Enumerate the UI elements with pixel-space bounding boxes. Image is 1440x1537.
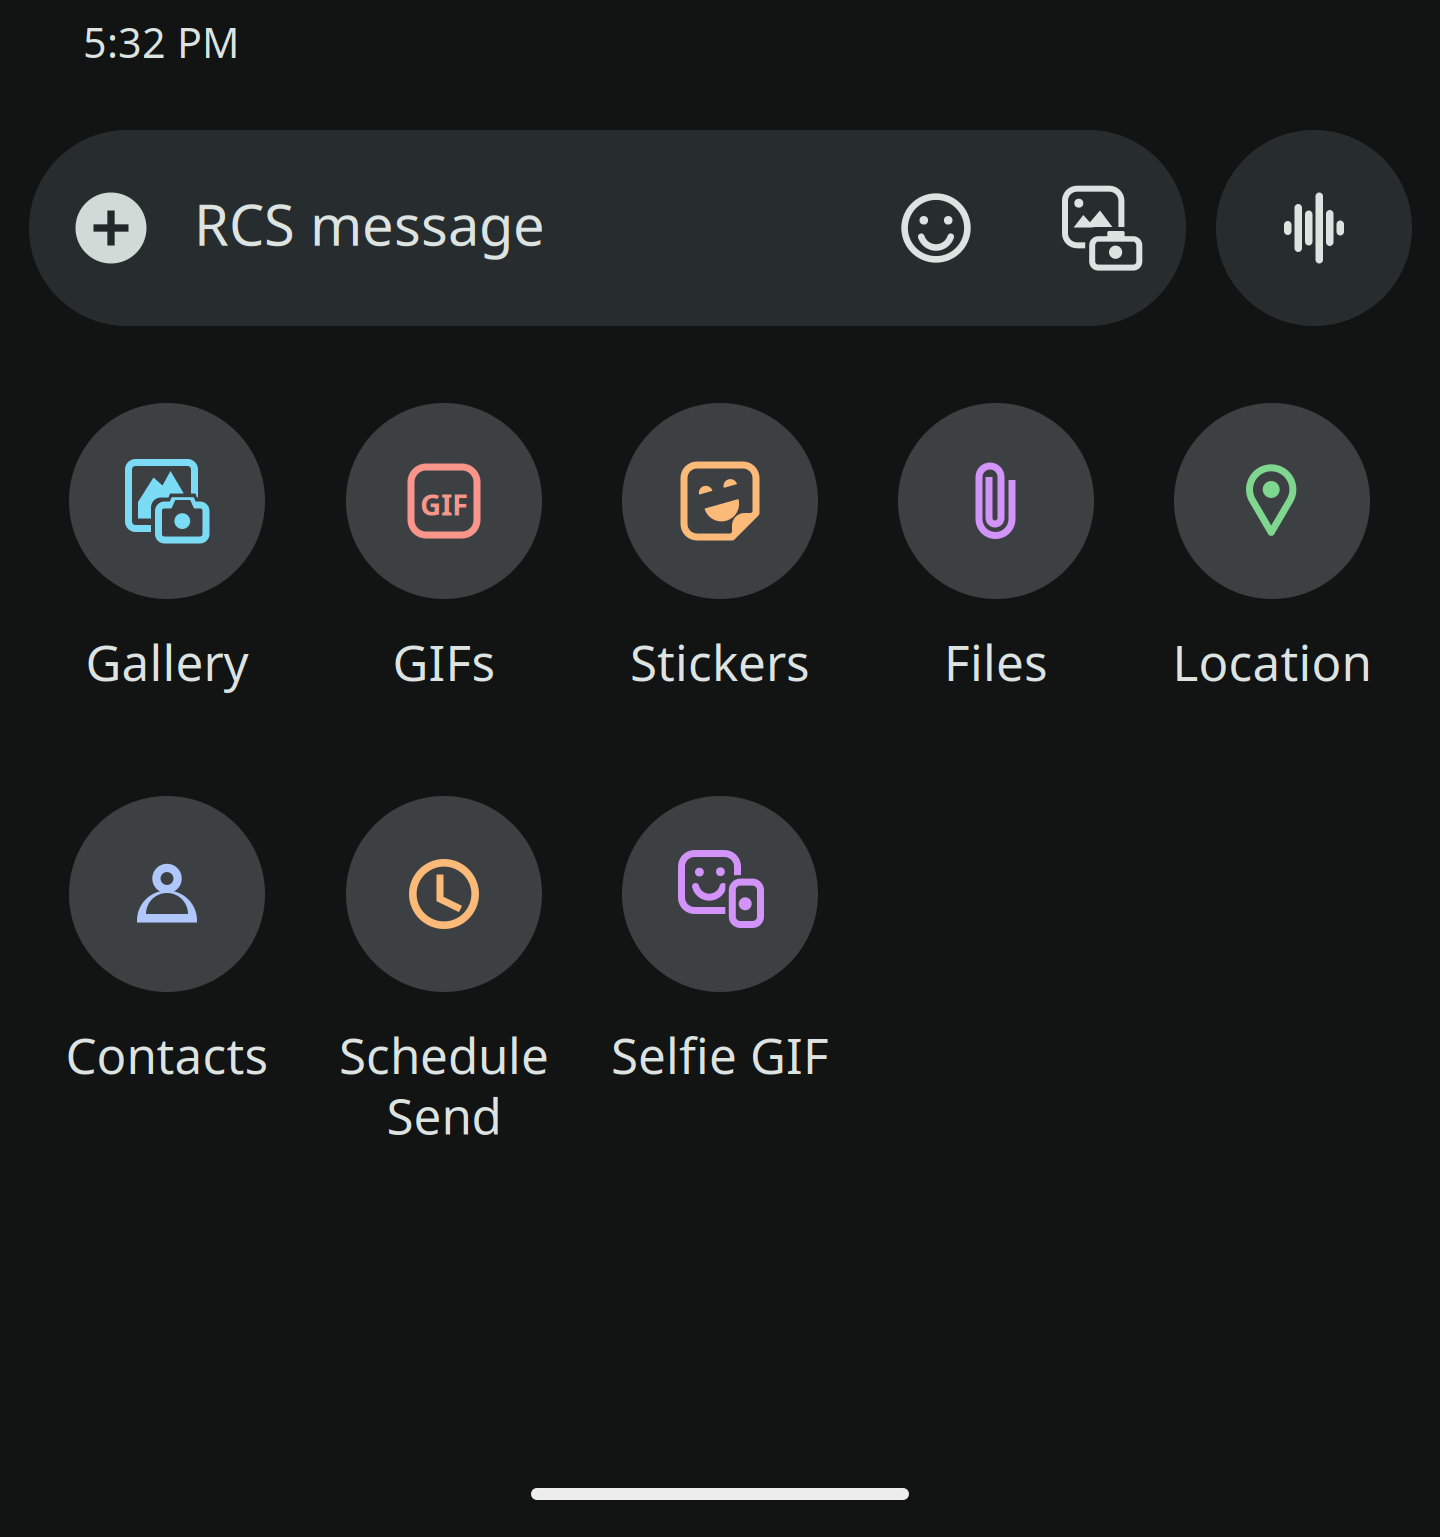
button[interactable]: GIF xyxy=(310,403,578,723)
button[interactable]: Schedule xyxy=(310,796,578,1116)
staticText: Gallery xyxy=(85,629,248,694)
staticText: Send xyxy=(386,1082,501,1148)
staticText: Selfie GIF xyxy=(611,1022,829,1087)
staticText: Schedule xyxy=(339,1022,549,1087)
staticText: RCS message xyxy=(194,187,545,261)
button[interactable]: Gallery and camera xyxy=(1061,185,1143,271)
staticText: GIF xyxy=(420,484,468,523)
button[interactable]: Selfie GIF xyxy=(586,796,854,1116)
button[interactable]: Contacts xyxy=(33,796,301,1116)
button[interactable]: Record voice message xyxy=(1216,130,1412,326)
button[interactable]: RCS message xyxy=(29,130,1186,326)
button[interactable]: Add attachment xyxy=(75,192,146,263)
staticText: Stickers xyxy=(630,629,810,694)
button[interactable]: Files xyxy=(862,403,1130,723)
button[interactable]: Gallery xyxy=(33,403,301,723)
button[interactable]: Emoji xyxy=(900,192,972,264)
staticText: Files xyxy=(944,629,1048,694)
staticText: Location xyxy=(1172,629,1371,694)
staticText: GIFs xyxy=(392,629,495,694)
button[interactable]: Stickers xyxy=(586,403,854,723)
button[interactable]: Location xyxy=(1138,403,1406,723)
staticText: Contacts xyxy=(65,1022,268,1087)
staticText: 5:32 PM xyxy=(83,15,239,69)
